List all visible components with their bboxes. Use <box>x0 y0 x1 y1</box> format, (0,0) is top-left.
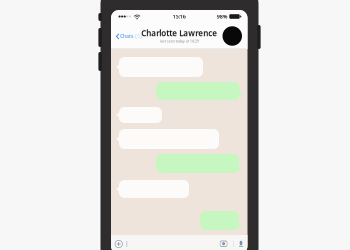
staticText: (1) <box>135 32 142 40</box>
staticText: last seen today at 14:29 <box>160 38 199 44</box>
button[interactable]: Record voice message <box>236 236 247 250</box>
staticText: 15:16 <box>173 13 186 20</box>
button[interactable]: Contact info <box>220 23 245 48</box>
staticText: Chats <box>120 32 134 40</box>
button[interactable]: Chats <box>111 25 145 47</box>
button[interactable]: Camera <box>216 236 231 250</box>
button[interactable]: Attach <box>111 236 126 250</box>
staticText: 98% <box>217 13 228 20</box>
staticText: Charlotte Lawrence <box>141 28 217 38</box>
